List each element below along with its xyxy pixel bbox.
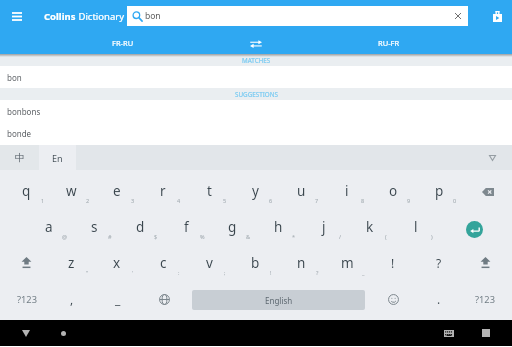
button[interactable]: Enter	[439, 209, 508, 245]
button[interactable]: RU-FR	[266, 32, 512, 54]
button[interactable]: bonbons	[0, 100, 512, 122]
button[interactable]: Backspace	[462, 173, 508, 209]
button[interactable]: Emoji	[370, 281, 416, 317]
button[interactable]: f	[163, 209, 209, 245]
staticText: 6	[269, 197, 273, 204]
button[interactable]: u	[278, 173, 324, 209]
button[interactable]: !	[370, 245, 416, 281]
button[interactable]: e	[94, 173, 140, 209]
staticText: @	[62, 233, 67, 240]
button[interactable]: Swap languages	[246, 32, 266, 54]
staticText: _	[115, 291, 121, 307]
button[interactable]: ,	[49, 281, 95, 317]
button[interactable]: i	[324, 173, 370, 209]
button[interactable]: English	[192, 281, 365, 317]
staticText: ?	[436, 255, 442, 271]
staticText: 5	[223, 197, 227, 204]
button[interactable]: a	[26, 209, 71, 245]
button[interactable]: Shift	[462, 245, 508, 281]
button[interactable]: Shift	[4, 245, 49, 281]
staticText: r	[160, 182, 166, 200]
button[interactable]: b	[232, 245, 278, 281]
staticText: 3	[131, 197, 135, 204]
button[interactable]: r	[140, 173, 186, 209]
button[interactable]: k	[347, 209, 393, 245]
button[interactable]: c	[140, 245, 186, 281]
staticText: bonde	[7, 128, 32, 139]
button[interactable]: Navigation menu	[0, 0, 34, 32]
button[interactable]: v	[186, 245, 232, 281]
button[interactable]: ?	[416, 245, 462, 281]
button[interactable]: Back	[6, 320, 46, 346]
button[interactable]: Change keyboard language	[141, 281, 187, 317]
staticText: ;	[224, 269, 226, 276]
staticText: 4	[177, 197, 181, 204]
button[interactable]: Home	[43, 320, 83, 346]
button[interactable]: m	[324, 245, 370, 281]
staticText: x	[113, 254, 121, 272]
button[interactable]: n	[278, 245, 324, 281]
button[interactable]: Switch keyboard	[429, 320, 469, 346]
staticText: #	[108, 233, 112, 240]
button[interactable]: w	[49, 173, 94, 209]
button[interactable]: ?123	[4, 281, 49, 317]
staticText: /	[339, 233, 342, 240]
button[interactable]: p	[416, 173, 462, 209]
staticText: $	[154, 233, 158, 240]
button[interactable]: bon	[127, 6, 468, 26]
button[interactable]: x	[94, 245, 140, 281]
staticText: MATCHES	[242, 56, 271, 65]
staticText: ,	[70, 291, 74, 307]
button[interactable]: Google Play Store	[482, 0, 512, 32]
staticText: o	[389, 182, 398, 200]
staticText: *	[292, 233, 296, 240]
staticText: d	[136, 218, 145, 236]
staticText: t	[207, 182, 212, 200]
button[interactable]: .	[416, 281, 462, 317]
staticText: g	[228, 218, 237, 236]
staticText: 9	[407, 197, 411, 204]
staticText: En	[52, 152, 63, 164]
button[interactable]: Hide keyboard	[472, 145, 512, 170]
staticText: e	[113, 182, 121, 200]
staticText: b	[251, 254, 260, 272]
staticText: FR-RU	[112, 38, 134, 48]
staticText: 中	[15, 151, 25, 164]
staticText: j	[322, 218, 326, 236]
staticText: !	[391, 255, 395, 271]
staticText: 8	[361, 197, 365, 204]
button[interactable]: l	[393, 209, 439, 245]
staticText: u	[297, 182, 306, 200]
button[interactable]: Clear search	[448, 6, 468, 26]
button[interactable]: q	[4, 173, 49, 209]
button[interactable]: t	[186, 173, 232, 209]
staticText: 0	[453, 197, 457, 204]
staticText: bonbons	[7, 106, 41, 117]
staticText: Collins	[44, 10, 76, 23]
staticText: )	[431, 233, 433, 240]
button[interactable]: h	[255, 209, 301, 245]
button[interactable]: o	[370, 173, 416, 209]
staticText: .	[437, 291, 441, 307]
button[interactable]: En	[39, 145, 76, 170]
button[interactable]: y	[232, 173, 278, 209]
button[interactable]: s	[71, 209, 117, 245]
staticText: :	[178, 269, 180, 276]
staticText: f	[184, 218, 189, 236]
button[interactable]: bonde	[0, 122, 512, 144]
staticText: 1	[41, 197, 45, 204]
staticText: RU-FR	[378, 38, 400, 48]
button[interactable]: d	[117, 209, 163, 245]
staticText: n	[297, 254, 306, 272]
staticText: &	[246, 233, 251, 240]
button[interactable]: Recent apps	[466, 320, 506, 346]
button[interactable]: ?123	[462, 281, 508, 317]
button[interactable]: z	[49, 245, 94, 281]
staticText: English	[265, 295, 293, 306]
button[interactable]: 中	[0, 145, 39, 170]
button[interactable]: bon	[0, 66, 512, 88]
button[interactable]: _	[95, 281, 141, 317]
button[interactable]: g	[209, 209, 255, 245]
button[interactable]: j	[301, 209, 347, 245]
button[interactable]: FR-RU	[0, 32, 246, 54]
